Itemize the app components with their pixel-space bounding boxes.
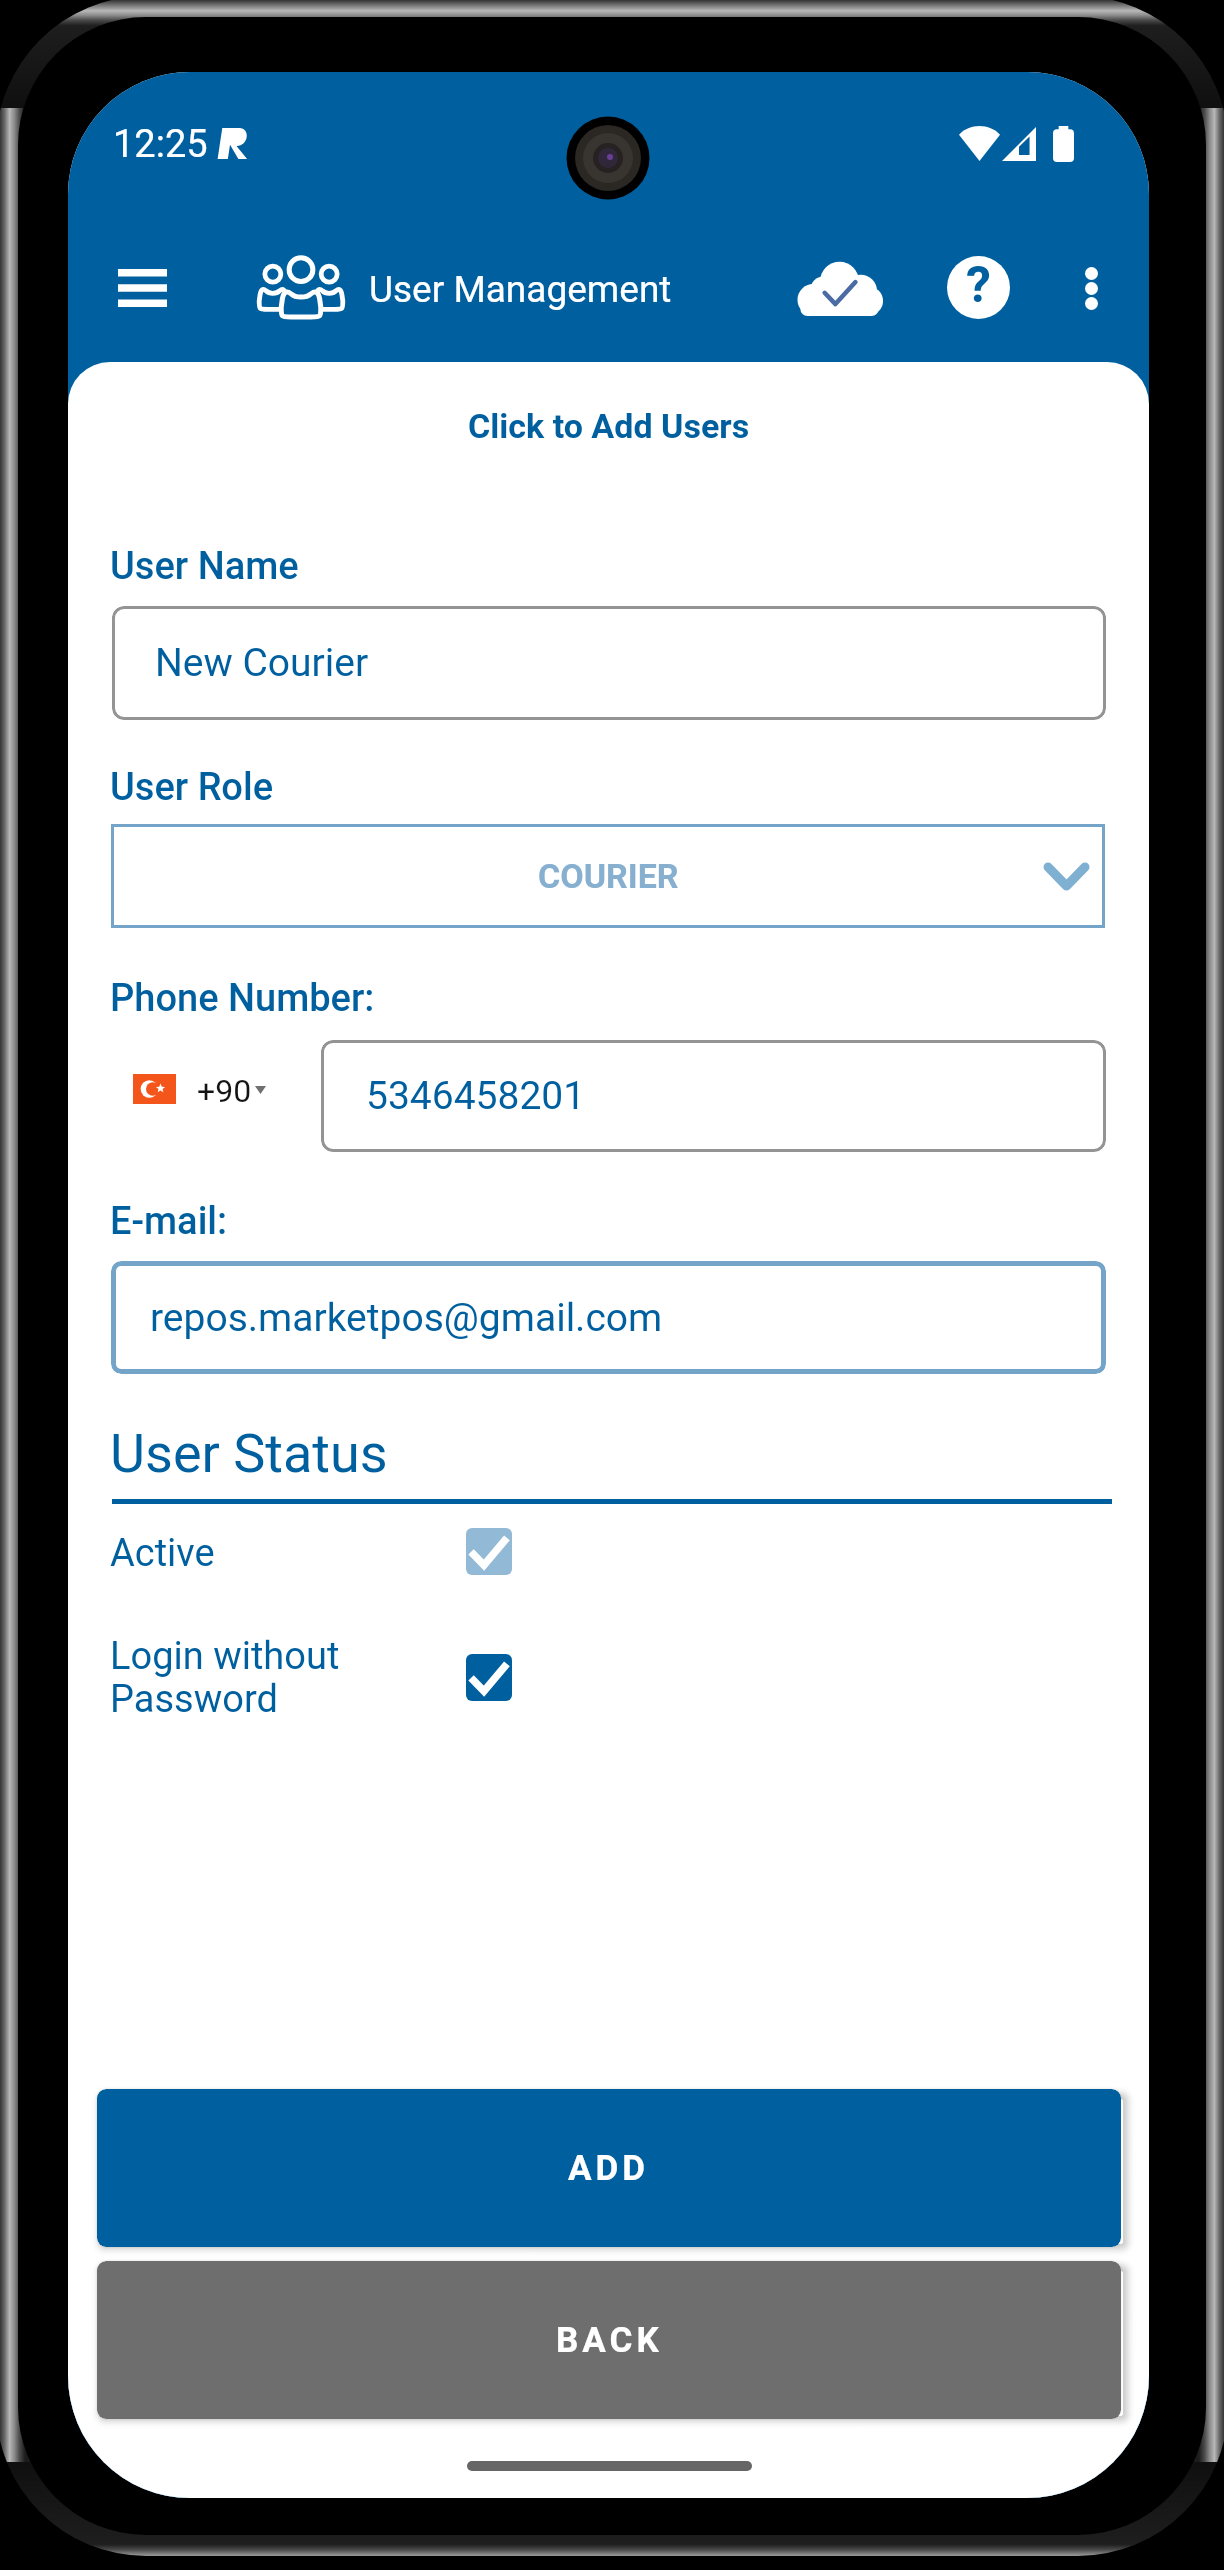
button[interactable]: Menu	[94, 240, 190, 336]
staticText: ?	[966, 256, 991, 315]
staticText: Login without Password	[110, 1634, 340, 1721]
button[interactable]: ADD	[97, 2089, 1121, 2247]
staticText: User Role	[110, 765, 274, 810]
staticText: COURIER	[538, 856, 679, 896]
button[interactable]: New Courier	[112, 606, 1106, 720]
button[interactable]: Cloud sync	[781, 244, 897, 330]
staticText: ADD	[568, 2148, 650, 2189]
button[interactable]: repos.marketpos@gmail.com	[111, 1261, 1106, 1374]
staticText: 5346458201	[366, 1073, 586, 1119]
staticText: New Courier	[155, 640, 369, 686]
button[interactable]: 5346458201	[321, 1040, 1106, 1152]
staticText: Click to Add Users	[468, 406, 750, 446]
staticText: +90	[197, 1072, 252, 1110]
button[interactable]: More options	[1047, 244, 1135, 332]
button[interactable]: COURIER	[111, 824, 1105, 928]
staticText: User Name	[110, 544, 299, 589]
staticText: User Status	[110, 1422, 388, 1485]
staticText: Active	[110, 1531, 215, 1576]
button[interactable]: Help	[934, 243, 1022, 331]
staticText: 12:25	[113, 122, 208, 167]
button[interactable]: Toggle	[466, 1654, 512, 1701]
staticText: E-mail:	[110, 1199, 228, 1244]
staticText: User Management	[369, 268, 672, 311]
staticText: repos.marketpos@gmail.com	[150, 1295, 663, 1341]
button[interactable]: BACK	[97, 2261, 1121, 2419]
staticText: Phone Number:	[110, 976, 375, 1021]
staticText: BACK	[556, 2320, 663, 2361]
button[interactable]: Toggle	[466, 1528, 512, 1575]
